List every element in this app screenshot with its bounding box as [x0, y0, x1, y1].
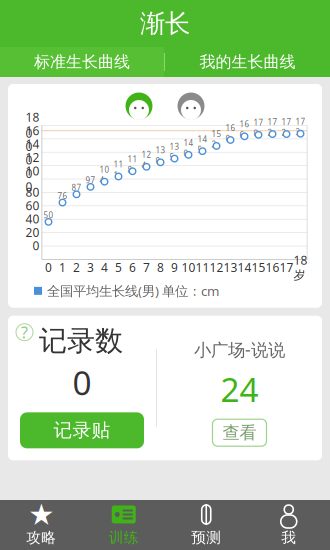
staticText: 我 — [281, 528, 296, 546]
staticText: 10 — [181, 259, 195, 275]
staticText: ? — [21, 322, 28, 343]
staticText: 166 — [239, 119, 249, 140]
staticText: 小广场-说说 — [194, 338, 285, 361]
staticText: 2 — [73, 259, 80, 275]
staticText: 9 — [171, 259, 178, 275]
staticText: 6 — [129, 259, 136, 275]
staticText: 7 — [143, 259, 150, 275]
button[interactable]: 查看 — [212, 419, 266, 446]
staticText: 160 — [225, 123, 235, 144]
button[interactable]: ★ — [0, 500, 82, 550]
staticText: 170 — [253, 117, 263, 139]
staticText: 104 — [99, 164, 109, 185]
staticText: 172 — [281, 117, 291, 138]
staticText: 12 — [209, 259, 223, 275]
staticText: 预测 — [191, 528, 221, 546]
staticText: 训练 — [109, 528, 139, 546]
staticText: 17 — [279, 259, 293, 275]
staticText: 5 — [115, 259, 122, 275]
staticText: 0 — [32, 238, 39, 254]
staticText: 76 — [57, 190, 67, 201]
staticText: 80 — [25, 184, 39, 200]
staticText: 120 — [25, 149, 39, 181]
staticText: 3 — [87, 259, 94, 275]
button[interactable]: 男孩生长曲线 — [124, 90, 154, 122]
button[interactable]: 预测 — [165, 500, 247, 550]
staticText: 8 — [157, 259, 164, 275]
staticText: 60 — [25, 197, 39, 213]
staticText: 记录数 — [39, 324, 123, 358]
staticText: 查看 — [222, 422, 256, 443]
staticText: 20 — [25, 224, 39, 240]
staticText: 140 — [25, 136, 39, 168]
button[interactable]: 女孩生长曲线 — [176, 90, 206, 122]
staticText: 40 — [25, 211, 39, 227]
button[interactable]: 训练 — [82, 500, 165, 550]
button[interactable]: 帮助 — [16, 324, 33, 341]
staticText: 全国平均生长线(男) 单位：cm — [47, 282, 219, 300]
staticText: 118 — [127, 154, 137, 175]
staticText: 173 — [295, 116, 305, 137]
staticText: 50 — [43, 210, 53, 220]
staticText: 14 — [237, 259, 251, 275]
button[interactable]: 我的生长曲线 — [165, 47, 330, 77]
staticText: 11 — [195, 259, 209, 275]
staticText: 我的生长曲线 — [199, 52, 295, 72]
staticText: 攻略 — [26, 528, 56, 546]
staticText: 145 — [197, 134, 207, 155]
staticText: 1 — [59, 259, 66, 275]
staticText: 0 — [72, 360, 91, 404]
staticText: 16 — [265, 259, 279, 275]
button[interactable]: 标准生长曲线 — [0, 47, 164, 77]
staticText: 18岁 — [293, 252, 307, 283]
staticText: 100 — [25, 163, 39, 195]
staticText: 172 — [267, 117, 277, 138]
staticText: 97 — [85, 175, 95, 185]
staticText: 135 — [169, 141, 179, 162]
staticText: 111 — [113, 159, 123, 180]
staticText: 24 — [220, 367, 258, 411]
staticText: 4 — [101, 259, 108, 275]
staticText: 15 — [251, 259, 265, 275]
staticText: 160 — [25, 123, 39, 154]
staticText: 124 — [141, 149, 151, 171]
staticText: 渐长 — [140, 8, 190, 39]
staticText: 140 — [183, 137, 193, 159]
staticText: 180 — [25, 109, 39, 141]
button[interactable]: 记录贴 — [20, 412, 144, 448]
staticText: 130 — [155, 145, 165, 166]
staticText: 152 — [211, 129, 221, 150]
button[interactable]: 我 — [247, 500, 330, 550]
staticText: 13 — [223, 259, 237, 275]
staticText: ★ — [28, 498, 54, 531]
staticText: 记录贴 — [53, 419, 110, 442]
staticText: 标准生长曲线 — [34, 52, 130, 72]
staticText: 0 — [45, 259, 52, 275]
staticText: 87 — [71, 182, 81, 193]
